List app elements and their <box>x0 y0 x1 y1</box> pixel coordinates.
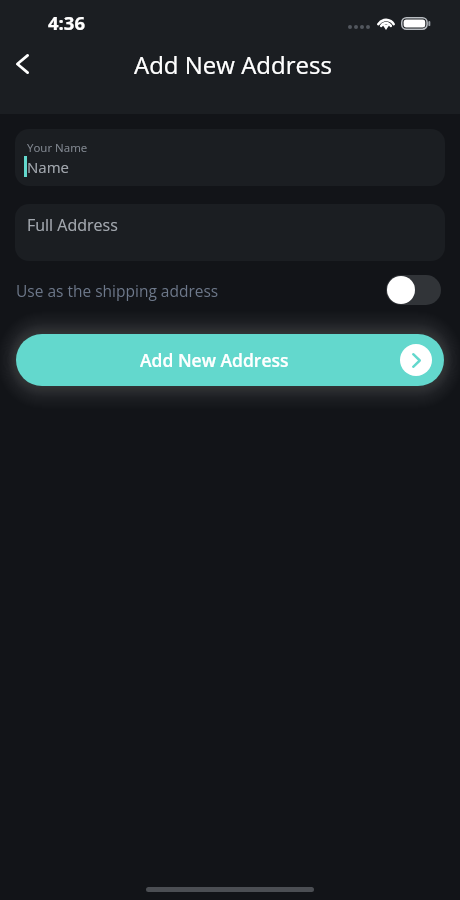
button[interactable]: Your Name <box>15 129 445 186</box>
button[interactable]: Add New Address <box>16 334 444 386</box>
button[interactable]: Back <box>0 41 45 86</box>
button[interactable]: Full Address <box>15 204 445 261</box>
staticText: Use as the shipping address <box>16 280 219 301</box>
staticText: 4:36 <box>48 10 86 35</box>
staticText: Add New Address <box>140 348 289 372</box>
staticText: Full Address <box>27 214 118 236</box>
staticText: Add New Address <box>134 48 332 81</box>
staticText: Name <box>27 157 69 177</box>
staticText: Your Name <box>27 140 88 156</box>
button[interactable]: Use as the shipping address <box>386 275 441 305</box>
